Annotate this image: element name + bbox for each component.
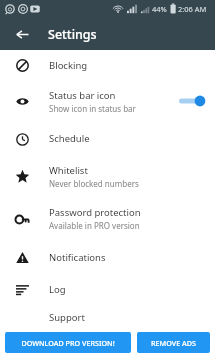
button[interactable]: Status bar icon xyxy=(0,80,215,122)
staticText: Schedule xyxy=(49,132,90,145)
staticText: Status bar icon xyxy=(49,89,116,102)
staticText: Support xyxy=(49,311,85,324)
staticText: Password protection xyxy=(49,206,141,219)
staticText: Settings xyxy=(48,26,97,43)
staticText: DOWNLOAD PRO VERSION! xyxy=(21,338,115,348)
staticText: Available in PRO version xyxy=(49,220,140,231)
button[interactable]: REMOVE ADS xyxy=(137,332,210,353)
staticText: Whitelist xyxy=(49,164,88,177)
staticText: Never blocked numbers xyxy=(49,178,139,189)
staticText: 44% xyxy=(152,4,167,14)
staticText: Log xyxy=(49,283,66,296)
button[interactable]: Notifications xyxy=(0,240,215,274)
button[interactable]: Schedule xyxy=(0,122,215,155)
button[interactable]: Back xyxy=(8,20,36,48)
staticText: Blocking xyxy=(49,59,88,72)
button[interactable]: Status bar icon toggle xyxy=(177,92,207,110)
button[interactable]: Password protection xyxy=(0,197,215,240)
staticText: Notifications xyxy=(49,251,106,264)
button[interactable]: Whitelist xyxy=(0,155,215,197)
button[interactable]: DOWNLOAD PRO VERSION! xyxy=(5,332,131,353)
staticText: Show icon in status bar xyxy=(49,103,136,114)
staticText: 2:06 AM xyxy=(178,4,207,14)
button[interactable]: Support xyxy=(0,304,215,330)
button[interactable]: Log xyxy=(0,274,215,304)
staticText: REMOVE ADS xyxy=(151,338,196,348)
button[interactable]: Blocking xyxy=(0,50,215,80)
